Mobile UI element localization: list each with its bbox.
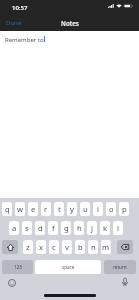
staticText: j <box>91 223 93 233</box>
button[interactable]: u <box>80 202 90 216</box>
button[interactable]: space <box>35 260 101 274</box>
staticText: i <box>97 204 99 214</box>
button[interactable]: Shift <box>2 240 18 254</box>
button[interactable]: v <box>62 240 72 254</box>
button[interactable]: Done <box>6 19 22 27</box>
button[interactable]: q <box>2 202 12 216</box>
staticText: d <box>38 223 43 233</box>
staticText: g <box>64 223 69 233</box>
staticText: Notes <box>61 19 79 27</box>
button[interactable]: 123 <box>2 260 33 274</box>
staticText: x <box>39 242 44 252</box>
button[interactable]: return <box>104 260 136 274</box>
button[interactable]: g <box>61 221 71 235</box>
staticText: o <box>109 204 114 214</box>
staticText: u <box>83 204 88 214</box>
staticText: p <box>122 204 127 214</box>
staticText: m <box>102 242 110 252</box>
button[interactable]: n <box>88 240 98 254</box>
staticText: q <box>5 204 10 214</box>
button[interactable]: p <box>119 202 129 216</box>
button[interactable]: Backspace <box>117 240 133 254</box>
button[interactable]: k <box>100 221 110 235</box>
button[interactable]: m <box>101 240 111 254</box>
staticText: 10:57 <box>12 4 28 12</box>
staticText: f <box>52 223 55 233</box>
staticText: n <box>91 242 96 252</box>
staticText: z <box>26 242 30 252</box>
button[interactable]: x <box>36 240 46 254</box>
button[interactable]: o <box>106 202 116 216</box>
button[interactable]: w <box>15 202 25 216</box>
staticText: h <box>77 223 82 233</box>
staticText: y <box>70 204 74 214</box>
button[interactable]: a <box>9 221 19 235</box>
button[interactable]: Emoji keyboard <box>6 277 18 289</box>
button[interactable]: j <box>87 221 97 235</box>
button[interactable]: y <box>67 202 77 216</box>
staticText: space <box>62 264 75 270</box>
button[interactable]: f <box>48 221 58 235</box>
staticText: r <box>44 204 48 214</box>
staticText: v <box>65 242 69 252</box>
staticText: w <box>17 204 23 214</box>
staticText: Done <box>6 19 22 27</box>
button[interactable]: e <box>28 202 38 216</box>
button[interactable]: t <box>54 202 64 216</box>
staticText: a <box>12 223 17 233</box>
staticText: return <box>113 264 127 270</box>
button[interactable]: c <box>49 240 59 254</box>
staticText: Remember to <box>5 36 44 44</box>
button[interactable]: b <box>75 240 85 254</box>
button[interactable]: Dictation <box>119 276 131 288</box>
staticText: k <box>103 223 108 233</box>
button[interactable]: r <box>41 202 51 216</box>
button[interactable]: l <box>113 221 123 235</box>
staticText: b <box>78 242 83 252</box>
button[interactable]: h <box>74 221 84 235</box>
button[interactable]: s <box>22 221 32 235</box>
staticText: 123 <box>14 264 22 270</box>
staticText: s <box>25 223 29 233</box>
button[interactable]: i <box>93 202 103 216</box>
button[interactable]: z <box>23 240 33 254</box>
staticText: t <box>58 204 61 214</box>
staticText: l <box>117 223 119 233</box>
staticText: c <box>52 242 56 252</box>
button[interactable]: d <box>35 221 45 235</box>
staticText: e <box>31 204 36 214</box>
